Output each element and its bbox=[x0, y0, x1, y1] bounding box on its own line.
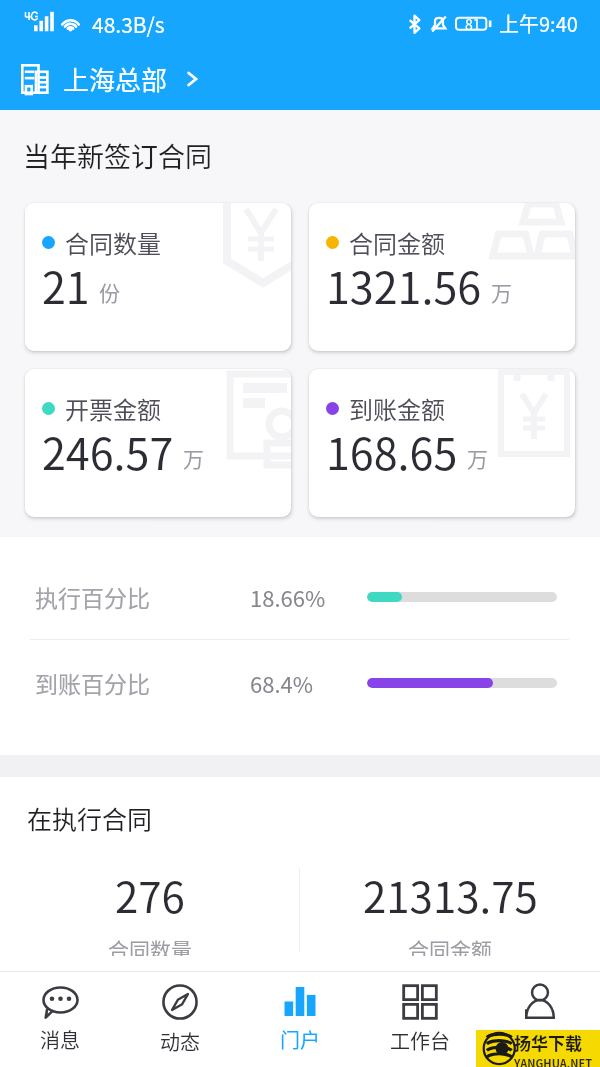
button[interactable]: 合同数量 bbox=[25, 203, 291, 351]
button[interactable]: Me bbox=[480, 972, 600, 1067]
staticText: 81 bbox=[465, 14, 481, 34]
staticText: 上午9:40 bbox=[499, 9, 578, 38]
staticText: 工作台 bbox=[390, 1026, 450, 1055]
button[interactable]: Activity bbox=[120, 972, 240, 1067]
staticText: 246.57 bbox=[42, 420, 174, 482]
staticText: 168.65 bbox=[326, 420, 458, 482]
staticText: 动态 bbox=[160, 1027, 200, 1056]
staticText: 门户 bbox=[280, 1025, 320, 1054]
button[interactable]: Messages bbox=[0, 972, 120, 1067]
button[interactable]: Portal bbox=[240, 972, 360, 1067]
staticText: 开票金额 bbox=[65, 391, 161, 426]
staticText: 到账百分比 bbox=[35, 666, 150, 699]
staticText: 在执行合同 bbox=[27, 800, 153, 836]
staticText: 合同数量 bbox=[108, 934, 192, 956]
button[interactable]: Workbench bbox=[360, 972, 480, 1067]
button[interactable]: 开票金额 bbox=[25, 369, 291, 517]
staticText: 21313.75 bbox=[363, 864, 538, 925]
staticText: 执行百分比 bbox=[35, 580, 150, 613]
staticText: 当年新签订合同 bbox=[23, 136, 212, 175]
staticText: YANGHUA.NET bbox=[514, 1055, 593, 1067]
staticText: 68.4% bbox=[250, 667, 314, 699]
button[interactable]: 合同金额 bbox=[309, 203, 575, 351]
staticText: 消息 bbox=[40, 1025, 80, 1054]
button[interactable]: 276 bbox=[0, 864, 299, 956]
staticText: 扬华下载 bbox=[514, 1030, 582, 1055]
staticText: 万 bbox=[467, 443, 488, 473]
staticText: 合同金额 bbox=[349, 225, 445, 260]
staticText: 上海总部 bbox=[63, 60, 168, 98]
staticText: 21 bbox=[42, 254, 90, 316]
button[interactable]: 21313.75 bbox=[300, 864, 600, 956]
staticText: 276 bbox=[115, 864, 185, 925]
staticText: 1321.56 bbox=[326, 254, 482, 316]
staticText: 合同金额 bbox=[408, 934, 492, 956]
staticText: 份 bbox=[99, 277, 120, 307]
staticText: 我 bbox=[530, 1026, 550, 1055]
staticText: 到账金额 bbox=[349, 391, 445, 426]
staticText: 万 bbox=[491, 277, 512, 307]
staticText: 48.3B/s bbox=[92, 9, 165, 39]
staticText: 合同数量 bbox=[65, 225, 161, 260]
staticText: 18.66% bbox=[250, 581, 326, 613]
button[interactable]: 到账金额 bbox=[309, 369, 575, 517]
button[interactable]: 上海总部 bbox=[0, 47, 600, 110]
staticText: 万 bbox=[183, 443, 204, 473]
